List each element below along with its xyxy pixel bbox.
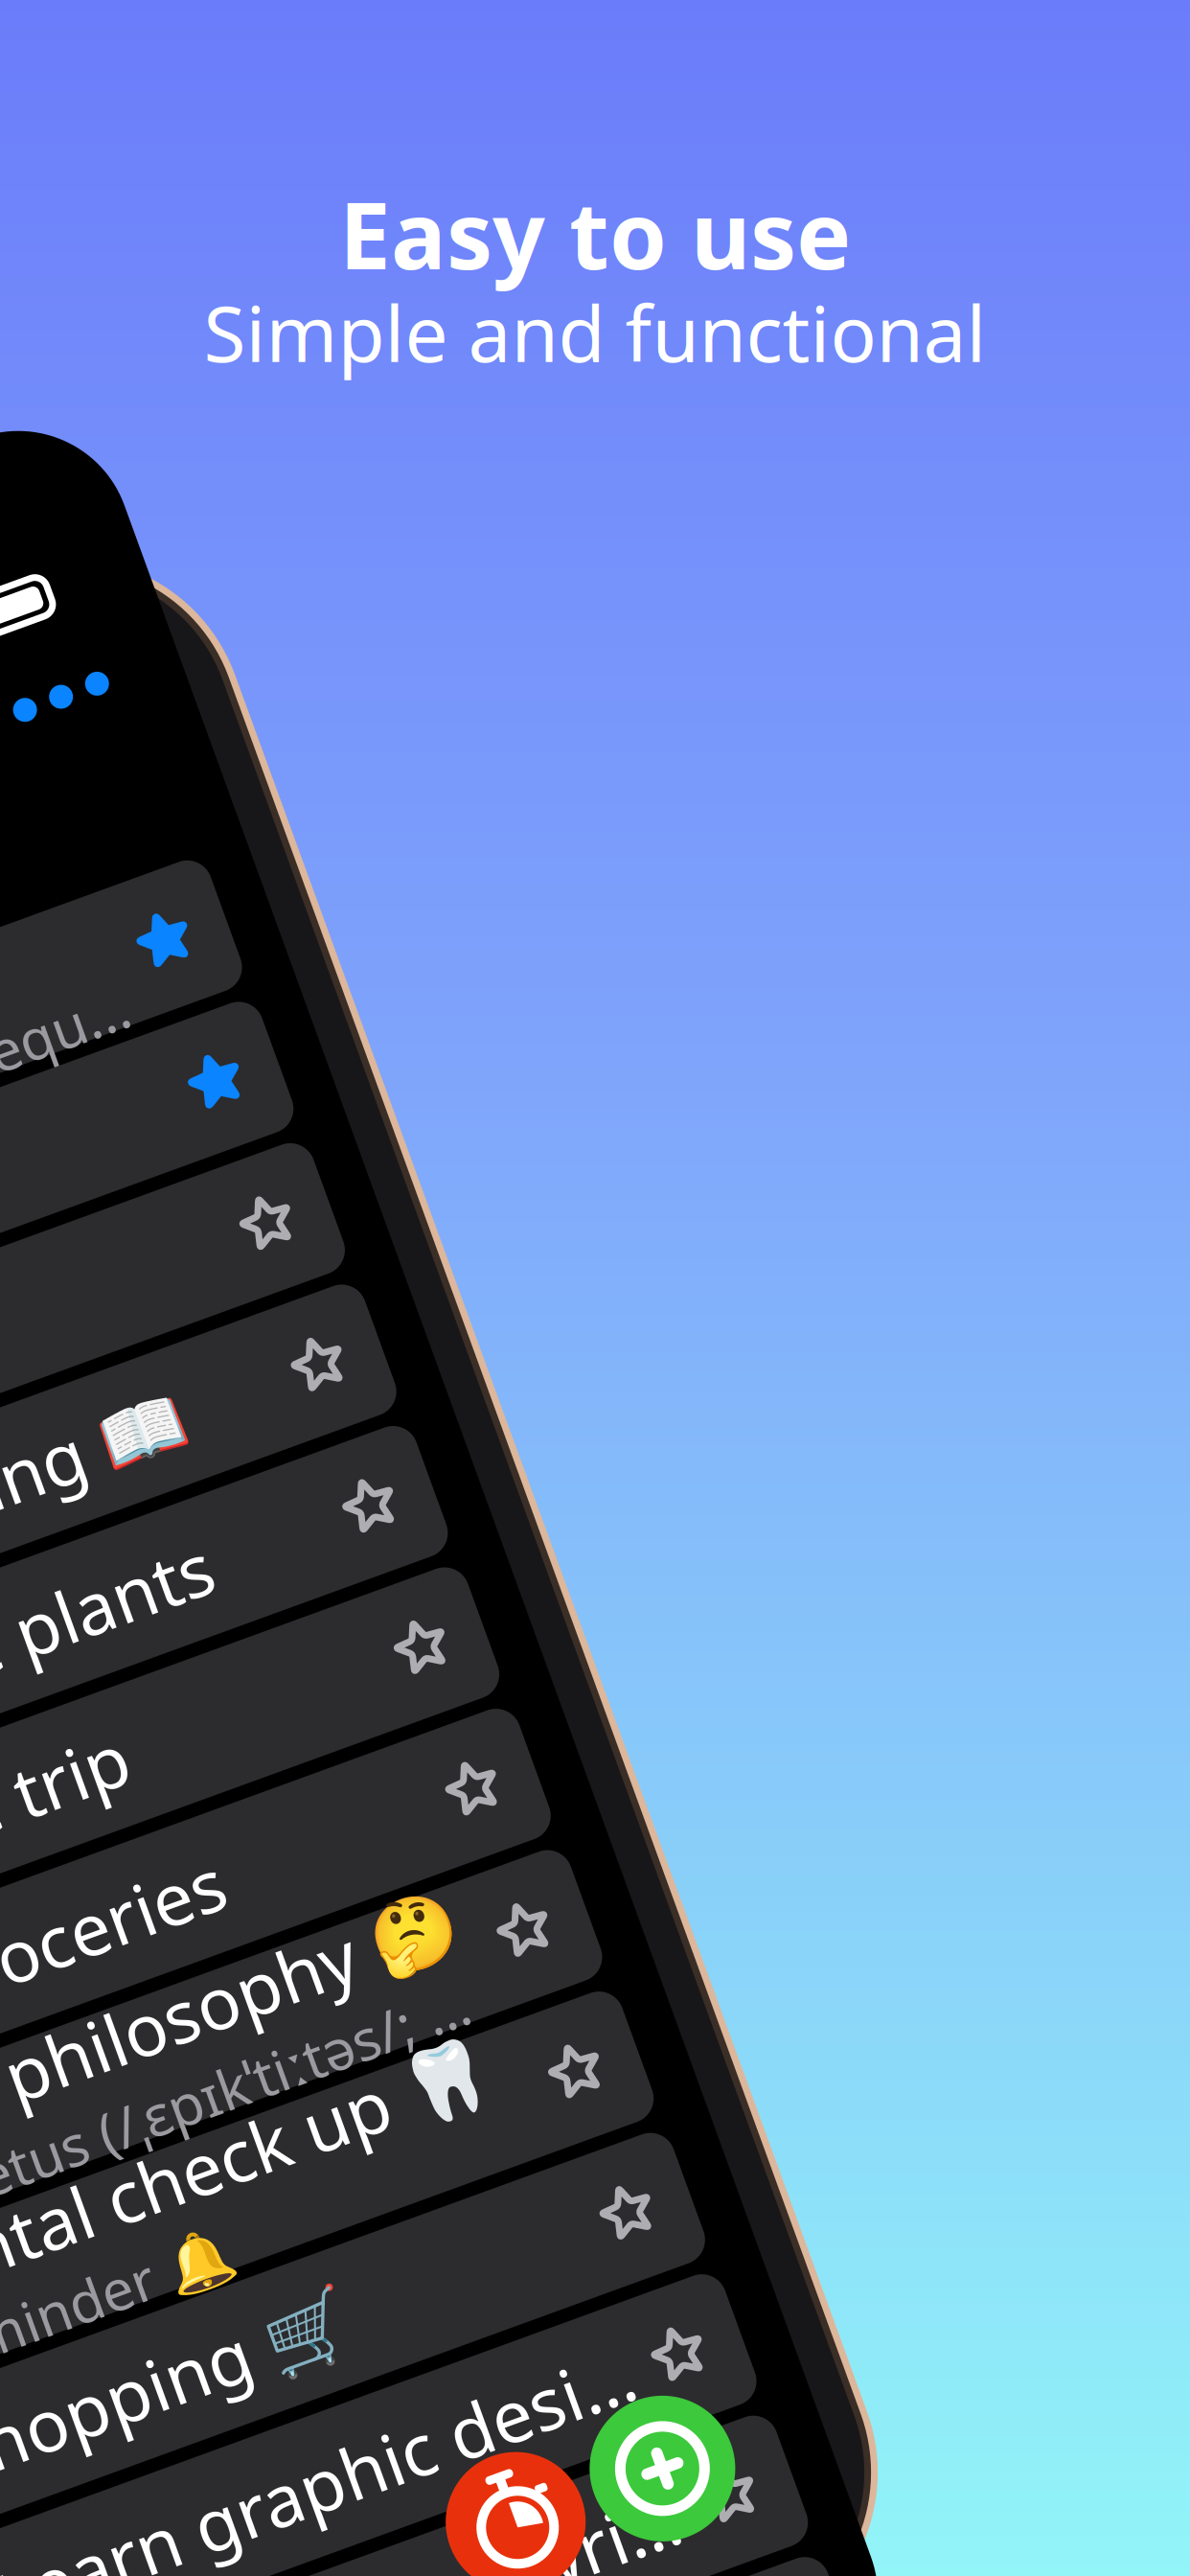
button[interactable]: Add item — [297, 2551, 443, 2576]
button[interactable]: Plan the trip — [0, 1701, 490, 1838]
staticText: Epictetus (/ˌɛpɪkˈtiːtəs/; Gre... — [0, 2081, 385, 2155]
staticText: Shopping 🛒 — [0, 2324, 128, 2419]
button[interactable]: Start timer — [144, 2554, 284, 2576]
staticText: Dental check up 🦷 — [0, 2136, 345, 2231]
button[interactable]: Read philosophy 🤔 — [0, 2002, 490, 2139]
staticText: Simple and functional — [204, 281, 986, 383]
button[interactable]: Learn Swift — [0, 949, 490, 1086]
staticText: Buy groceries — [0, 1872, 158, 1968]
staticText: Reminder 🔔 — [0, 2231, 41, 2306]
staticText: Read philosophy 🤔 — [0, 1986, 364, 2081]
button[interactable]: Finish reading 📖 — [0, 1400, 490, 1537]
staticText: Learn graphic design 👨‍💻 — [0, 2474, 385, 2569]
staticText: Plan the trip — [0, 1722, 110, 1817]
staticText: In mathematics, an equ... — [0, 1027, 368, 1102]
button[interactable]: Call mom — [0, 1250, 490, 1387]
button[interactable]: Shopping 🛒 — [0, 2303, 490, 2440]
staticText: Easy to use — [339, 172, 851, 295]
staticText: Go to the gym — [0, 1120, 176, 1215]
staticText: Water the plants — [0, 1572, 255, 1667]
staticText: Learn Swift — [0, 932, 75, 1028]
button[interactable]: Go to the gym — [0, 1099, 490, 1236]
button[interactable]: Water the plants — [0, 1551, 490, 1688]
staticText: Finish reading 📖 — [0, 1421, 281, 1516]
button[interactable]: Dental check up 🦷 — [0, 2152, 490, 2289]
button[interactable]: Buy groceries — [0, 1851, 490, 1989]
button[interactable]: Learn graphic design 👨‍💻 — [0, 2453, 490, 2576]
